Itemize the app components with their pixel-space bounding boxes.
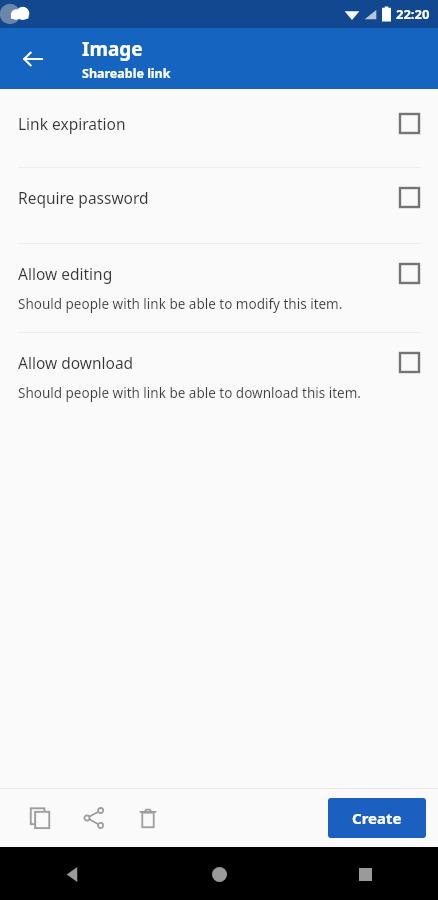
button[interactable]: Allow editing	[0, 263, 438, 313]
button[interactable]: Back	[12, 38, 54, 80]
button[interactable]: Delete	[126, 796, 170, 840]
button[interactable]: Share	[72, 796, 116, 840]
staticText: 22:20	[396, 5, 430, 23]
staticText: Allow editing	[18, 263, 399, 284]
staticText: Allow download	[18, 352, 399, 373]
button[interactable]: Require password	[0, 187, 438, 208]
staticText: Image	[82, 36, 143, 62]
button[interactable]: Back	[49, 850, 97, 898]
button[interactable]: Copy	[18, 796, 62, 840]
staticText: Shareable link	[82, 65, 171, 82]
staticText: Link expiration	[18, 113, 399, 134]
staticText: Should people with link be able to downl…	[18, 384, 361, 402]
button[interactable]: Create	[328, 798, 426, 838]
staticText: Should people with link be able to modif…	[18, 295, 343, 313]
staticText: Create	[352, 808, 402, 828]
button[interactable]: Allow download	[0, 352, 438, 402]
button[interactable]: Recents	[341, 850, 389, 898]
button[interactable]: Home	[195, 850, 243, 898]
staticText: Require password	[18, 187, 399, 208]
button[interactable]: Link expiration	[0, 113, 438, 134]
